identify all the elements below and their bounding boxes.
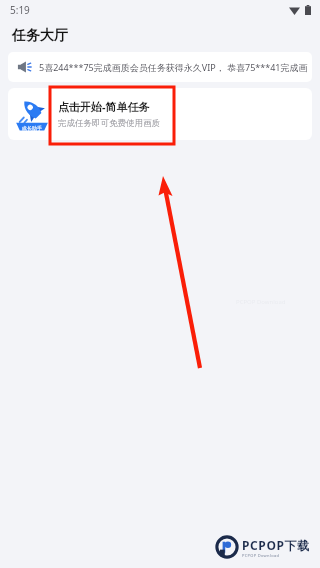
other: Announcement: [16, 59, 32, 75]
staticText: 成长助手: [22, 125, 42, 131]
button[interactable]: Announcement: [8, 52, 312, 82]
staticText: 点击开始-简单任务: [58, 99, 150, 114]
staticText: 5喜244***75完成画质会员任务获得永久VIP， 恭喜75***41完成画质…: [39, 61, 312, 73]
staticText: PCPOP下载: [242, 537, 310, 553]
staticText: 5:19: [10, 3, 30, 17]
staticText: PCPOP Download: [242, 553, 280, 558]
button[interactable]: Task: [8, 88, 312, 140]
other: Task: [14, 96, 50, 132]
staticText: 完成任务即可免费使用画质: [58, 118, 160, 129]
staticText: 任务大厅: [12, 27, 68, 45]
